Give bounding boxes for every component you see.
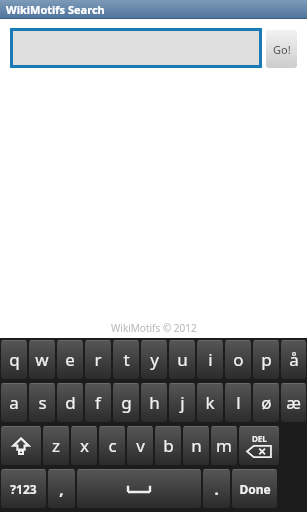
- staticText: n: [191, 434, 202, 457]
- staticText: s: [38, 391, 47, 414]
- staticText: g: [121, 391, 132, 414]
- staticText: r: [94, 348, 102, 371]
- staticText: æ: [286, 391, 301, 414]
- button[interactable]: l: [225, 383, 251, 422]
- button[interactable]: s: [29, 383, 55, 422]
- staticText: q: [9, 348, 20, 371]
- button[interactable]: y: [141, 340, 167, 379]
- button[interactable]: d: [57, 383, 83, 422]
- button[interactable]: p: [253, 340, 279, 379]
- staticText: ø: [261, 391, 272, 414]
- staticText: a: [9, 391, 19, 414]
- staticText: y: [150, 348, 159, 371]
- staticText: e: [65, 348, 75, 371]
- button[interactable]: n: [183, 426, 209, 465]
- staticText: ?123: [10, 481, 37, 497]
- staticText: c: [108, 434, 117, 457]
- staticText: m: [216, 434, 232, 457]
- staticText: DEL: [252, 433, 267, 444]
- button[interactable]: c: [99, 426, 125, 465]
- staticText: Go!: [273, 42, 291, 57]
- staticText: t: [123, 348, 130, 371]
- staticText: u: [177, 348, 188, 371]
- button[interactable]: Shift: [1, 426, 41, 465]
- staticText: f: [95, 391, 101, 414]
- button[interactable]: i: [197, 340, 223, 379]
- button[interactable]: å: [281, 340, 306, 379]
- button[interactable]: v: [127, 426, 153, 465]
- staticText: x: [80, 434, 89, 457]
- button[interactable]: ø: [253, 383, 279, 422]
- staticText: z: [52, 434, 60, 457]
- button[interactable]: u: [169, 340, 195, 379]
- button[interactable]: .: [203, 469, 230, 508]
- button[interactable]: e: [57, 340, 83, 379]
- button[interactable]: g: [113, 383, 139, 422]
- button[interactable]: o: [225, 340, 251, 379]
- staticText: v: [136, 434, 145, 457]
- button[interactable]: b: [155, 426, 181, 465]
- button[interactable]: f: [85, 383, 111, 422]
- button[interactable]: t: [113, 340, 139, 379]
- button[interactable]: m: [211, 426, 237, 465]
- staticText: k: [205, 391, 215, 414]
- button[interactable]: Go!: [266, 30, 297, 68]
- button[interactable]: ?123: [1, 469, 46, 508]
- staticText: å: [289, 348, 299, 371]
- button[interactable]: j: [169, 383, 195, 422]
- button[interactable]: k: [197, 383, 223, 422]
- button[interactable]: w: [29, 340, 55, 379]
- staticText: d: [65, 391, 76, 414]
- staticText: j: [180, 391, 185, 414]
- staticText: h: [149, 391, 160, 414]
- staticText: Done: [239, 481, 271, 497]
- staticText: w: [35, 348, 49, 371]
- button[interactable]: Space: [77, 469, 201, 508]
- button[interactable]: h: [141, 383, 167, 422]
- button[interactable]: r: [85, 340, 111, 379]
- staticText: ,: [59, 479, 64, 499]
- staticText: o: [233, 348, 244, 371]
- button[interactable]: a: [1, 383, 27, 422]
- button[interactable]: z: [43, 426, 69, 465]
- staticText: WikiMotifs © 2012: [111, 321, 197, 335]
- staticText: b: [163, 434, 174, 457]
- button[interactable]: Done: [232, 469, 277, 508]
- button[interactable]: ,: [48, 469, 75, 508]
- button[interactable]: æ: [281, 383, 306, 422]
- staticText: p: [261, 348, 272, 371]
- button[interactable]: Delete: [239, 426, 279, 465]
- staticText: .: [214, 479, 219, 499]
- staticText: WikiMotifs Search: [6, 2, 105, 17]
- staticText: i: [208, 348, 213, 371]
- button[interactable]: x: [71, 426, 97, 465]
- staticText: l: [236, 391, 241, 414]
- button[interactable]: q: [1, 340, 27, 379]
